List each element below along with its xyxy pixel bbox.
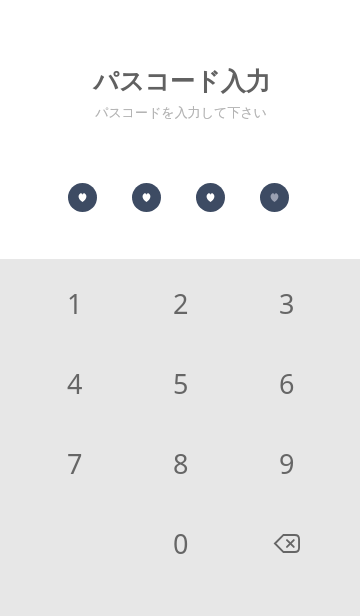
button[interactable]: Delete — [234, 503, 340, 583]
staticText: 9 — [279, 445, 295, 482]
staticText: 1 — [67, 285, 83, 322]
button[interactable]: 9 — [234, 423, 340, 503]
staticText: 6 — [279, 365, 295, 402]
staticText: 4 — [67, 365, 83, 402]
button[interactable]: 0 — [128, 503, 234, 583]
staticText: 3 — [279, 285, 295, 322]
staticText: パスコードを入力して下さい — [95, 104, 267, 120]
staticText: 2 — [173, 285, 189, 322]
staticText: 7 — [67, 445, 83, 482]
button[interactable]: 3 — [234, 263, 340, 343]
staticText: 5 — [173, 365, 189, 402]
staticText: 0 — [173, 525, 189, 562]
button[interactable]: 1 — [22, 263, 128, 343]
button[interactable]: 6 — [234, 343, 340, 423]
button[interactable]: 8 — [128, 423, 234, 503]
button[interactable]: 7 — [22, 423, 128, 503]
button[interactable]: 4 — [22, 343, 128, 423]
button[interactable]: 5 — [128, 343, 234, 423]
staticText: パスコード入力 — [93, 66, 271, 97]
staticText: 8 — [173, 445, 189, 482]
button[interactable]: 2 — [128, 263, 234, 343]
